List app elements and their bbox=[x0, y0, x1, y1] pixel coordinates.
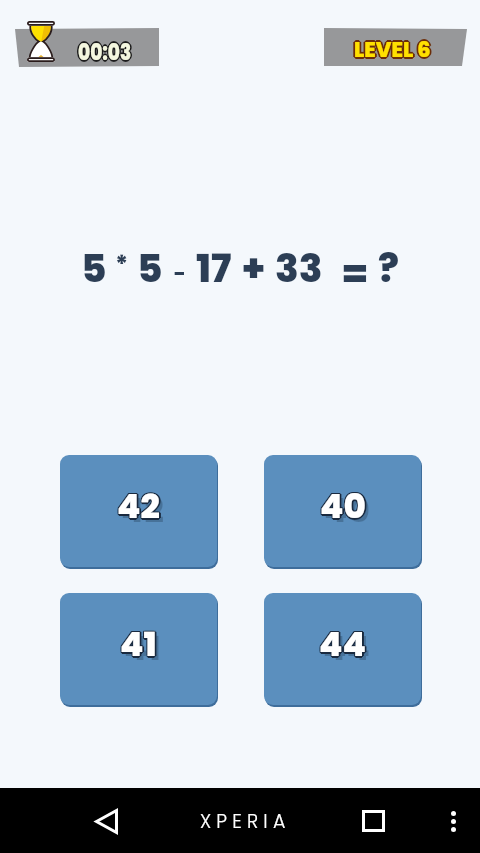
staticText: LEVEL 6 bbox=[355, 34, 432, 63]
staticText: 41 bbox=[120, 619, 157, 667]
staticText: LEVEL 6 bbox=[353, 36, 430, 65]
staticText: LEVEL 6 bbox=[356, 35, 433, 64]
staticText: 00:03 bbox=[78, 35, 132, 66]
staticText: 44 bbox=[321, 620, 368, 668]
staticText: ‐ bbox=[173, 242, 186, 295]
staticText: 44 bbox=[319, 620, 366, 668]
staticText: = bbox=[342, 246, 368, 301]
staticText: 5 bbox=[137, 241, 163, 296]
staticText: 42 bbox=[118, 481, 161, 529]
staticText: 42 bbox=[117, 484, 160, 532]
staticText: 33 bbox=[275, 241, 323, 296]
staticText: 40 bbox=[321, 483, 367, 531]
staticText: 42 bbox=[121, 486, 164, 534]
button[interactable]: More options bbox=[431, 799, 475, 843]
staticText: 40 bbox=[320, 482, 366, 530]
staticText: 00:03 bbox=[77, 36, 131, 67]
staticText: 42 bbox=[116, 482, 159, 530]
staticText: 41 bbox=[119, 621, 156, 669]
staticText: LEVEL 6 bbox=[352, 35, 429, 64]
staticText: 40 bbox=[319, 481, 365, 529]
staticText: 40 bbox=[321, 481, 367, 529]
staticText: 40 bbox=[319, 482, 365, 530]
staticText: LEVEL 6 bbox=[355, 36, 432, 65]
staticText: 42 bbox=[117, 482, 160, 530]
staticText: 40 bbox=[320, 484, 366, 532]
staticText: 44 bbox=[318, 621, 365, 669]
staticText: LEVEL 6 bbox=[353, 34, 430, 63]
staticText: 44 bbox=[323, 624, 370, 672]
staticText: 41 bbox=[122, 620, 159, 668]
staticText: 41 bbox=[124, 624, 161, 672]
staticText: 41 bbox=[120, 620, 157, 668]
staticText: 42 bbox=[118, 483, 161, 531]
staticText: LEVEL 6 bbox=[354, 35, 431, 64]
staticText: 40 bbox=[322, 482, 368, 530]
staticText: 40 bbox=[319, 483, 365, 531]
staticText: + bbox=[242, 240, 265, 295]
staticText: 00:03 bbox=[79, 36, 133, 67]
staticText: 42 bbox=[116, 481, 159, 529]
staticText: 00:03 bbox=[78, 39, 132, 70]
staticText: 44 bbox=[320, 621, 367, 669]
staticText: 5 bbox=[81, 241, 107, 296]
staticText: 44 bbox=[320, 619, 367, 667]
button[interactable]: 41 bbox=[60, 593, 217, 705]
staticText: 44 bbox=[319, 622, 366, 670]
button[interactable]: 40 bbox=[264, 455, 421, 567]
button[interactable]: Home bbox=[349, 799, 397, 843]
button[interactable]: Back bbox=[82, 799, 130, 843]
staticText: 41 bbox=[121, 619, 158, 667]
staticText: XPERIA bbox=[200, 808, 291, 835]
staticText: 00:03 bbox=[80, 37, 133, 68]
staticText: 41 bbox=[119, 619, 156, 667]
staticText: ? bbox=[378, 241, 399, 296]
staticText: 44 bbox=[318, 620, 365, 668]
staticText: LEVEL 6 bbox=[354, 37, 431, 66]
staticText: 42 bbox=[116, 483, 159, 531]
button[interactable]: 44 bbox=[264, 593, 421, 705]
staticText: 17 bbox=[196, 241, 232, 296]
staticText: 40 bbox=[320, 481, 366, 529]
staticText: 41 bbox=[119, 620, 156, 668]
staticText: 00:03 bbox=[79, 38, 133, 69]
staticText: 42 bbox=[117, 481, 160, 529]
staticText: 44 bbox=[319, 619, 366, 667]
staticText: 41 bbox=[120, 622, 157, 670]
staticText: 00:03 bbox=[77, 38, 131, 69]
staticText: 00:03 bbox=[76, 37, 130, 68]
staticText: * bbox=[115, 248, 129, 282]
button[interactable]: 42 bbox=[60, 455, 217, 567]
staticText: 40 bbox=[324, 486, 370, 534]
staticText: LEVEL 6 bbox=[354, 33, 431, 62]
staticText: 41 bbox=[121, 621, 158, 669]
staticText: 00:03 bbox=[78, 37, 132, 68]
staticText: 44 bbox=[318, 619, 365, 667]
staticText: 42 bbox=[119, 482, 162, 530]
